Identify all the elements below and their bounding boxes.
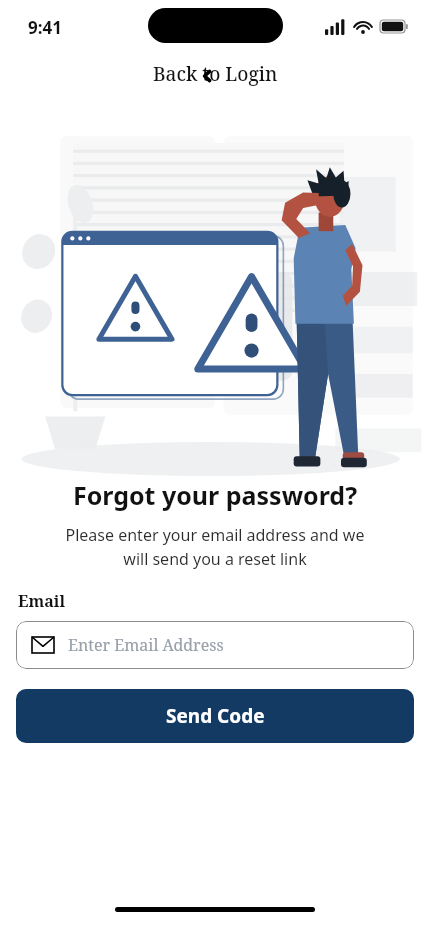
staticText: Back to Login <box>153 61 278 87</box>
staticText: Please enter your email address and we w… <box>30 524 400 570</box>
staticText: Send Code <box>166 703 265 729</box>
staticText: Email <box>18 590 66 612</box>
other: Back <box>201 70 213 82</box>
staticText: Enter Email Address <box>68 634 224 656</box>
button[interactable]: Send Code <box>16 689 414 743</box>
button[interactable]: Enter Email Address <box>16 621 414 669</box>
staticText: 9:41 <box>28 16 62 39</box>
button[interactable]: Back to Login <box>143 57 288 91</box>
staticText: Forgot your password? <box>0 478 430 512</box>
